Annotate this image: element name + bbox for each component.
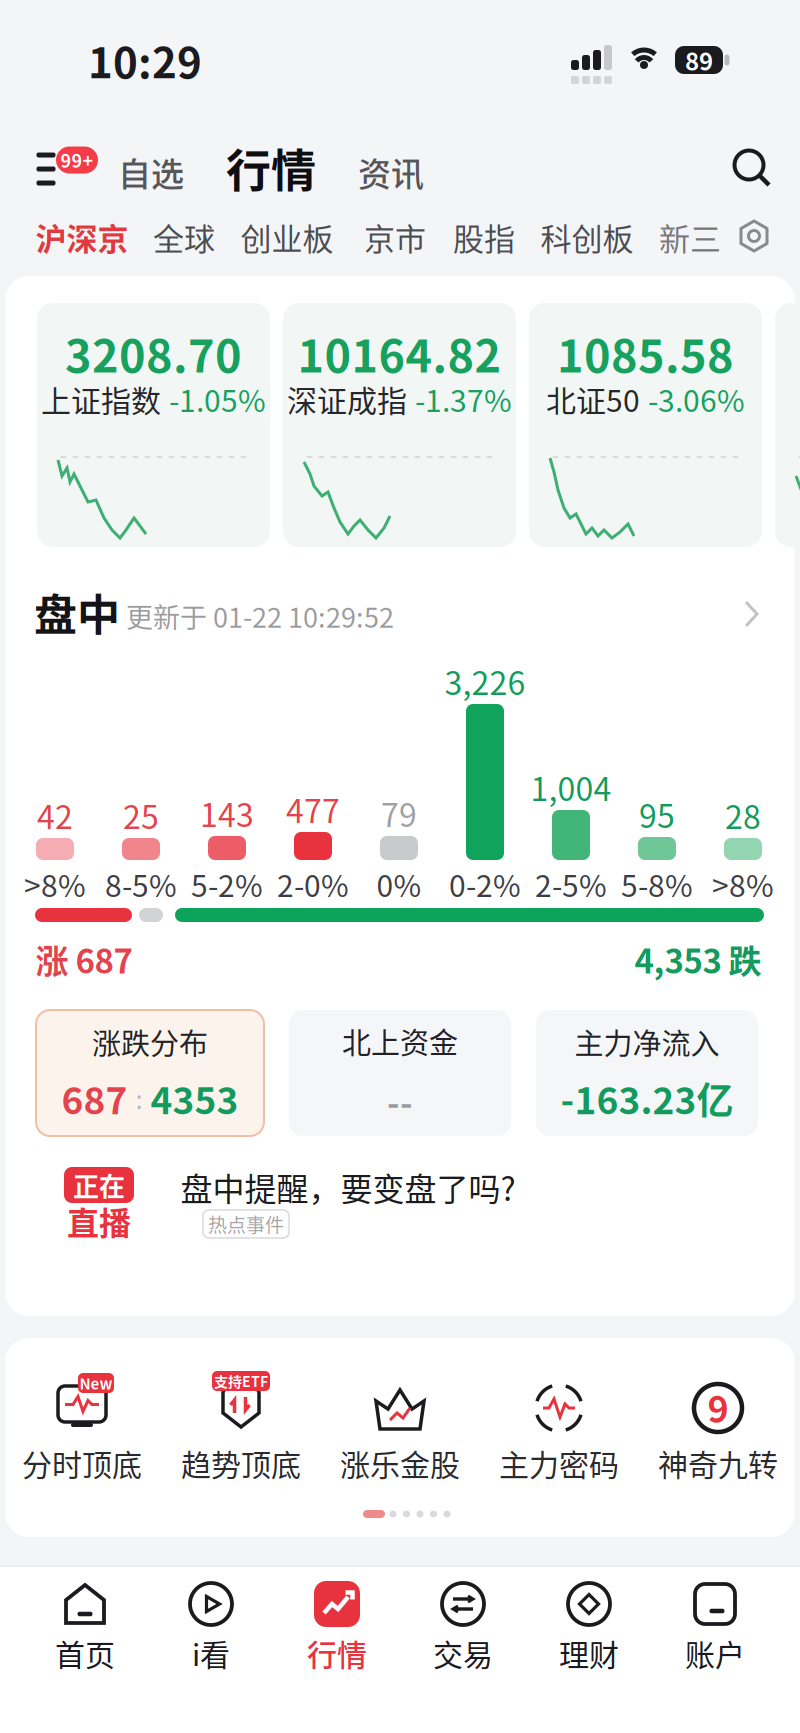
staticText: 9 [707,1381,728,1433]
staticText: 行情 [307,1631,367,1675]
staticText: 新三 [659,215,721,259]
staticText: 10:29 [88,30,202,90]
staticText: 股指 [453,215,515,259]
staticText: 盘中 [34,581,120,643]
button[interactable]: 创业板 [240,215,333,259]
staticText: 涨乐金股 [340,1441,460,1485]
staticText: -1.37% [415,377,512,421]
button[interactable]: 1085.58 [529,303,762,547]
staticText: 5-2% [191,862,263,906]
button[interactable]: 科创板 [540,215,633,259]
button[interactable]: 支持ETF [166,1355,316,1505]
staticText: 主力密码 [499,1441,619,1485]
staticText: 北上资金 [342,1020,458,1062]
staticText: 资讯 [358,148,424,196]
staticText: >8% [24,862,86,906]
staticText: 687 [61,1071,127,1125]
staticText: -163.23亿 [560,1071,733,1125]
staticText: 全球 [153,215,215,259]
button[interactable]: 消息菜单 [13,117,113,209]
button[interactable]: 3208.70 [37,303,270,547]
button[interactable]: 正在 [20,1140,780,1260]
staticText: 1085.58 [557,320,734,386]
staticText: 沪深京 [35,215,128,259]
button[interactable]: 股指 [453,215,515,259]
staticText: 4353 [150,1071,238,1125]
button[interactable]: 盘中 [20,582,780,652]
button[interactable]: 理财 [529,1567,649,1677]
staticText: 盘中提醒，要变盘了吗? [180,1164,515,1210]
button[interactable]: 新三 [659,215,721,259]
staticText: 89 [685,43,713,77]
staticText: 理财 [559,1631,619,1675]
staticText: 79 [381,790,417,836]
staticText: 28 [725,792,761,838]
staticText: 更新于 01-22 10:29:52 [126,596,394,636]
staticText: 支持ETF [214,1371,268,1391]
staticText: 正在 [73,1166,125,1204]
staticText: >8% [712,862,774,906]
button[interactable]: 主力密码 [484,1355,634,1505]
staticText: 直播 [67,1198,131,1244]
button[interactable]: 自选 [118,148,184,196]
button[interactable]: 账户 [655,1567,775,1677]
staticText: 477 [286,786,340,832]
staticText: 2-5% [535,862,607,906]
staticText: 10164.82 [297,320,501,386]
staticText: 上证指数 [41,377,161,421]
staticText: -3.06% [648,377,745,421]
staticText: 3,226 [444,658,525,704]
staticText: 首页 [55,1631,115,1675]
staticText: 主力净流入 [574,1021,719,1063]
button[interactable]: 京市 [364,215,426,259]
staticText: 25 [123,792,159,838]
staticText: 42 [37,792,73,838]
staticText: 99+ [60,147,93,173]
button[interactable]: 9 [643,1355,793,1505]
button[interactable]: 涨跌分布 [36,1010,264,1136]
button[interactable]: 行情 [277,1567,397,1677]
staticText: 趋势顶底 [181,1441,301,1485]
button[interactable]: 沪深京 [35,215,128,259]
button[interactable]: i看 [151,1567,271,1677]
button[interactable]: 主力净流入 [536,1010,758,1136]
staticText: 8-5% [105,862,177,906]
staticText: 0-2% [449,862,521,906]
staticText: 行情 [226,135,316,201]
staticText: 自选 [118,148,184,196]
staticText: 涨跌分布 [92,1021,208,1063]
staticText: 科创板 [540,215,633,259]
button[interactable]: 行情 [226,135,316,201]
staticText: 交易 [433,1631,493,1675]
staticText: : [135,1079,142,1117]
staticText: 0% [376,862,421,906]
button[interactable]: New [7,1355,157,1505]
staticText: 1,004 [530,764,611,810]
staticText: 账户 [685,1631,745,1675]
button[interactable]: 全球 [153,215,215,259]
staticText: 5-8% [621,862,693,906]
staticText: 3208.70 [65,320,242,386]
staticText: -1.05% [169,377,266,421]
staticText: i看 [192,1631,230,1675]
button[interactable]: 交易 [403,1567,523,1677]
button[interactable]: 首页 [25,1567,145,1677]
staticText: 4,353 跌 [634,935,761,983]
button[interactable]: 板块设置 [734,216,774,256]
staticText: 热点事件 [208,1210,284,1238]
staticText: 95 [639,791,675,837]
button[interactable]: 涨乐金股 [325,1355,475,1505]
staticText: 创业板 [240,215,333,259]
staticText: 神奇九转 [658,1441,778,1485]
button[interactable]: 10164.82 [283,303,516,547]
staticText: -- [387,1076,413,1126]
button[interactable]: 资讯 [358,148,424,196]
staticText: 2-0% [277,862,349,906]
staticText: 143 [200,790,254,836]
staticText: 京市 [364,215,426,259]
staticText: New [79,1372,112,1394]
button[interactable]: 搜索 [730,146,774,190]
button[interactable] [775,303,800,547]
staticText: 深证成指 [287,377,407,421]
button[interactable]: 北上资金 [289,1010,511,1136]
